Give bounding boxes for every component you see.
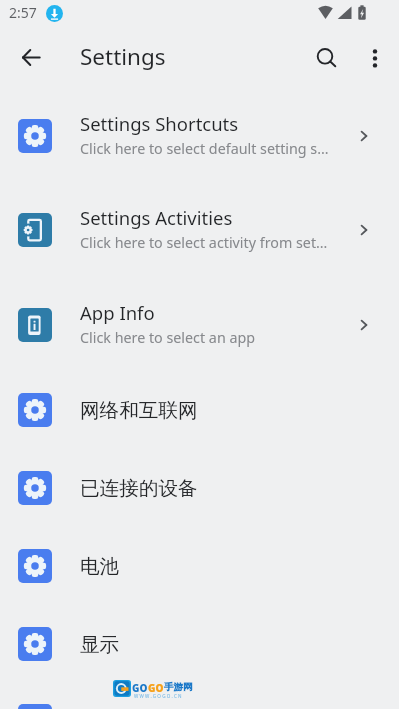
staticText: 电池 xyxy=(80,554,120,579)
staticText: App Info xyxy=(80,300,155,325)
button[interactable]: 网络和互联网 xyxy=(0,371,399,449)
button[interactable]: Back xyxy=(11,37,52,78)
staticText: Settings Shortcuts xyxy=(80,111,239,136)
staticText: 2:57 xyxy=(9,3,37,22)
button[interactable]: Settings Shortcuts xyxy=(0,89,399,183)
staticText: Click here to select an app xyxy=(80,328,256,347)
button[interactable]: 电池 xyxy=(0,527,399,605)
button[interactable]: 声音 xyxy=(0,682,399,709)
button[interactable]: Settings Activities xyxy=(0,183,399,277)
button[interactable]: 显示 xyxy=(0,605,399,683)
staticText: 已连接的设备 xyxy=(80,476,198,501)
staticText: Settings xyxy=(80,41,166,72)
staticText: GO xyxy=(148,681,164,695)
button[interactable]: 已连接的设备 xyxy=(0,449,399,527)
button[interactable]: App Info xyxy=(0,278,399,372)
staticText: Settings Activities xyxy=(80,205,233,230)
staticText: Click here to select activity from set… xyxy=(80,233,328,252)
button[interactable]: Search xyxy=(305,37,346,78)
staticText: 显示 xyxy=(80,632,120,657)
staticText: Click here to select default setting s… xyxy=(80,139,329,158)
staticText: 网络和互联网 xyxy=(80,398,198,423)
staticText: 手游网 xyxy=(164,681,193,693)
staticText: W W W . G O G O . C N xyxy=(134,693,182,699)
staticText: GO xyxy=(132,681,148,695)
button[interactable]: More options xyxy=(355,37,396,78)
